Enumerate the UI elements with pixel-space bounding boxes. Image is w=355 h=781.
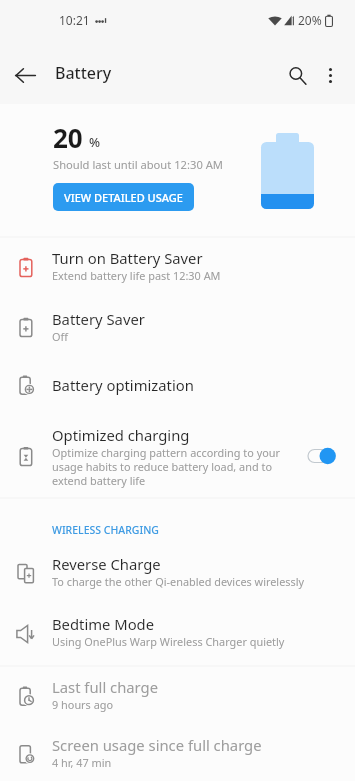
button[interactable]: More options xyxy=(308,53,352,97)
staticText: Screen usage since full charge xyxy=(52,735,262,755)
staticText: Optimize charging pattern according to y… xyxy=(52,445,284,488)
staticText: Optimized charging xyxy=(52,425,190,445)
staticText: Bedtime Mode xyxy=(52,614,155,634)
staticText: Extend battery life past 12:30 AM xyxy=(52,268,221,283)
staticText: % xyxy=(89,133,101,151)
button[interactable]: Reverse Charge xyxy=(0,544,355,604)
staticText: 4 hr, 47 min xyxy=(52,755,112,770)
staticText: Reverse Charge xyxy=(52,554,161,574)
staticText: Off xyxy=(52,329,68,344)
staticText: 9 hours ago xyxy=(52,697,114,712)
staticText: Using OnePlus Warp Wireless Charger quie… xyxy=(52,634,285,649)
button[interactable]: Turn on Battery Saver xyxy=(0,238,355,299)
button[interactable]: Search xyxy=(276,54,319,97)
staticText: 20 xyxy=(53,120,83,155)
button[interactable]: Screen usage since full charge xyxy=(0,725,355,781)
staticText: Battery optimization xyxy=(52,375,194,395)
button[interactable]: Optimized charging toggle xyxy=(303,446,341,466)
button[interactable]: Battery optimization xyxy=(0,359,355,410)
staticText: 20% xyxy=(298,12,322,28)
staticText: WIRELESS CHARGING xyxy=(52,523,159,537)
button[interactable]: Last full charge xyxy=(0,667,355,725)
button[interactable]: Battery Saver xyxy=(0,299,355,359)
button[interactable]: VIEW DETAILED USAGE xyxy=(53,183,194,211)
button[interactable]: Back xyxy=(3,53,47,97)
button[interactable]: Bedtime Mode xyxy=(0,604,355,665)
staticText: VIEW DETAILED USAGE xyxy=(64,190,183,205)
staticText: 10:21 xyxy=(59,12,90,28)
staticText: Battery xyxy=(55,62,112,84)
staticText: Should last until about 12:30 AM xyxy=(53,157,224,172)
staticText: Battery Saver xyxy=(52,309,145,329)
button[interactable]: Optimized charging xyxy=(0,415,355,497)
staticText: Last full charge xyxy=(52,677,159,697)
staticText: Turn on Battery Saver xyxy=(52,248,203,268)
staticText: To charge the other Qi-enabled devices w… xyxy=(52,574,305,589)
